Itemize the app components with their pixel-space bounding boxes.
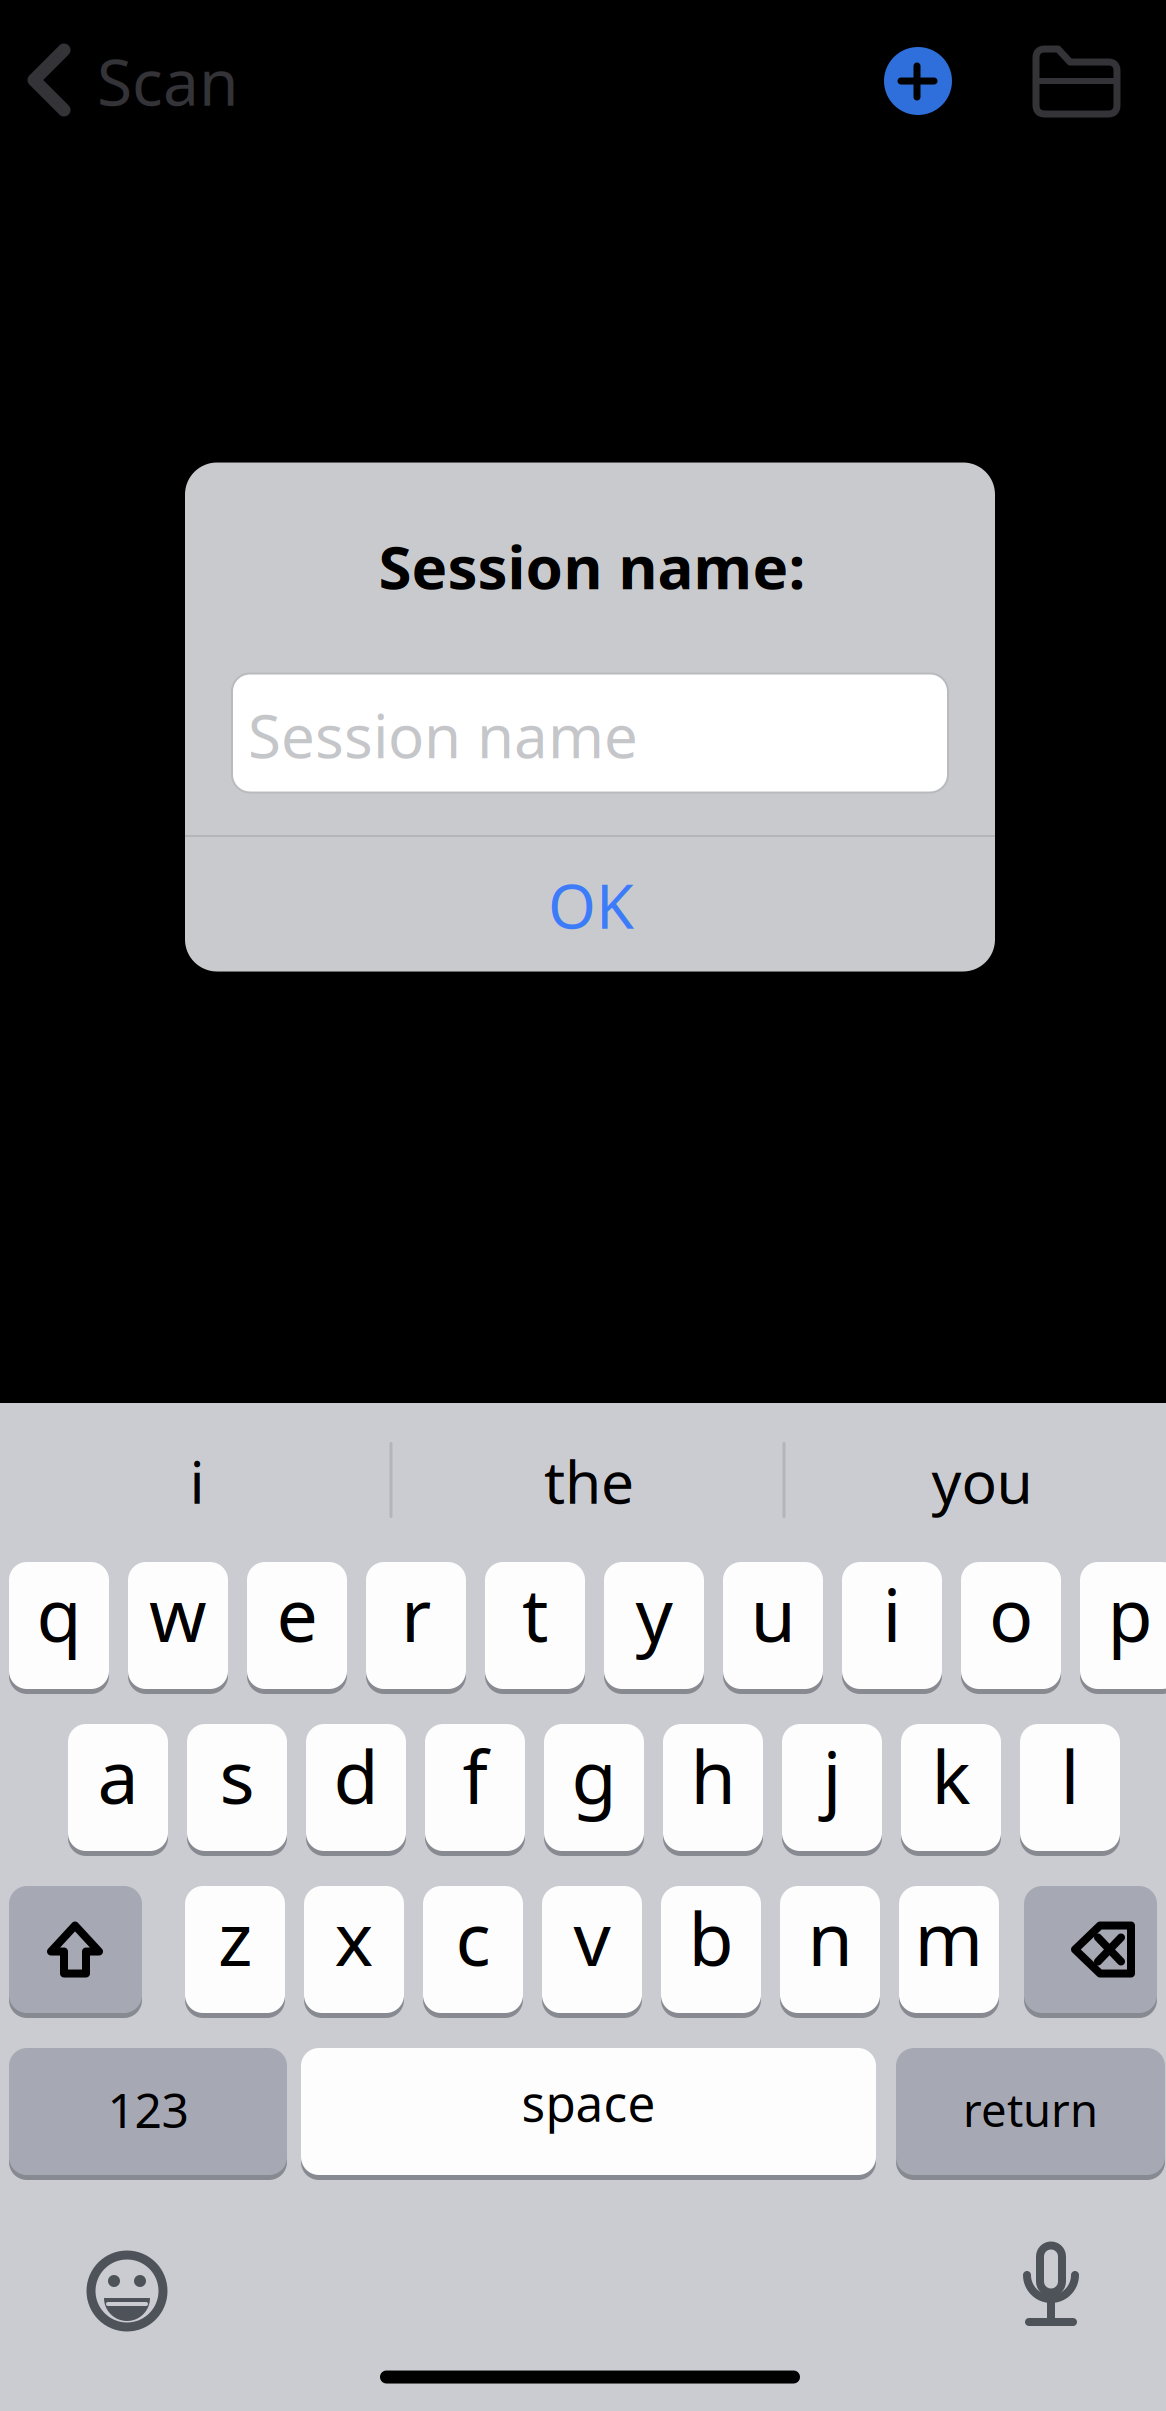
button[interactable]: a (0, 0, 1166, 2411)
button[interactable]: n (0, 0, 1166, 2411)
button[interactable]: v (0, 0, 1166, 2411)
staticText: i (882, 1565, 901, 1662)
staticText: q (36, 1565, 81, 1662)
button[interactable]: l (0, 0, 1166, 2411)
button[interactable]: d (0, 0, 1166, 2411)
staticText: d (333, 1727, 378, 1824)
button[interactable]: Folders (0, 0, 1166, 2411)
staticText: k (931, 1727, 970, 1824)
button[interactable]: k (0, 0, 1166, 2411)
staticText: space (521, 2070, 655, 2135)
staticText: 123 (107, 2078, 188, 2141)
staticText: l (1060, 1727, 1079, 1824)
staticText: r (401, 1565, 431, 1662)
staticText: Scan (97, 38, 239, 123)
button[interactable]: Delete (0, 0, 1166, 2411)
button[interactable]: New session (0, 0, 1166, 2411)
button[interactable]: s (0, 0, 1166, 2411)
button[interactable]: o (0, 0, 1166, 2411)
button[interactable]: w (0, 0, 1166, 2411)
button[interactable]: the (0, 0, 1166, 2411)
staticText: h (690, 1727, 735, 1824)
staticText: p (1107, 1565, 1152, 1662)
staticText: x (334, 1889, 373, 1986)
button[interactable]: r (0, 0, 1166, 2411)
button[interactable]: OK (0, 0, 1166, 2411)
staticText: w (149, 1565, 207, 1662)
button[interactable]: j (0, 0, 1166, 2411)
staticText: v (573, 1889, 610, 1986)
button[interactable]: Emoji keyboard (0, 0, 1166, 2411)
button[interactable]: t (0, 0, 1166, 2411)
staticText: i (189, 1442, 204, 1520)
staticText: y (635, 1565, 672, 1662)
staticText: c (455, 1889, 490, 1986)
button[interactable]: f (0, 0, 1166, 2411)
staticText: f (462, 1727, 487, 1824)
button[interactable]: p (0, 0, 1166, 2411)
button[interactable]: h (0, 0, 1166, 2411)
button[interactable]: return (0, 0, 1166, 2411)
staticText: u (750, 1565, 795, 1662)
button[interactable]: e (0, 0, 1166, 2411)
button[interactable]: c (0, 0, 1166, 2411)
staticText: Session name (248, 695, 638, 775)
button[interactable]: g (0, 0, 1166, 2411)
button[interactable]: b (0, 0, 1166, 2411)
button[interactable]: Dictation (0, 0, 1166, 2411)
button[interactable]: i (0, 0, 1166, 2411)
staticText: OK (548, 864, 634, 946)
button[interactable]: i (0, 0, 1166, 2411)
button[interactable]: z (0, 0, 1166, 2411)
button[interactable]: Scan (0, 0, 1166, 2411)
staticText: return (963, 2079, 1098, 2140)
button[interactable]: u (0, 0, 1166, 2411)
staticText: e (276, 1565, 317, 1662)
staticText: you (931, 1442, 1032, 1520)
button[interactable]: y (0, 0, 1166, 2411)
staticText: g (571, 1727, 616, 1824)
staticText: z (218, 1889, 252, 1986)
staticText: Session name: (378, 526, 805, 606)
button[interactable]: 123 (0, 0, 1166, 2411)
button[interactable]: you (0, 0, 1166, 2411)
staticText: n (807, 1889, 852, 1986)
staticText: a (97, 1727, 138, 1824)
staticText: j (822, 1727, 841, 1824)
staticText: s (219, 1727, 254, 1824)
button[interactable]: m (0, 0, 1166, 2411)
button[interactable]: Shift (0, 0, 1166, 2411)
staticText: m (914, 1889, 983, 1986)
staticText: b (688, 1889, 733, 1986)
staticText: the (544, 1442, 634, 1520)
staticText: t (522, 1565, 548, 1662)
staticText: o (989, 1565, 1033, 1662)
button[interactable]: space (0, 0, 1166, 2411)
button[interactable]: q (0, 0, 1166, 2411)
button[interactable]: x (0, 0, 1166, 2411)
